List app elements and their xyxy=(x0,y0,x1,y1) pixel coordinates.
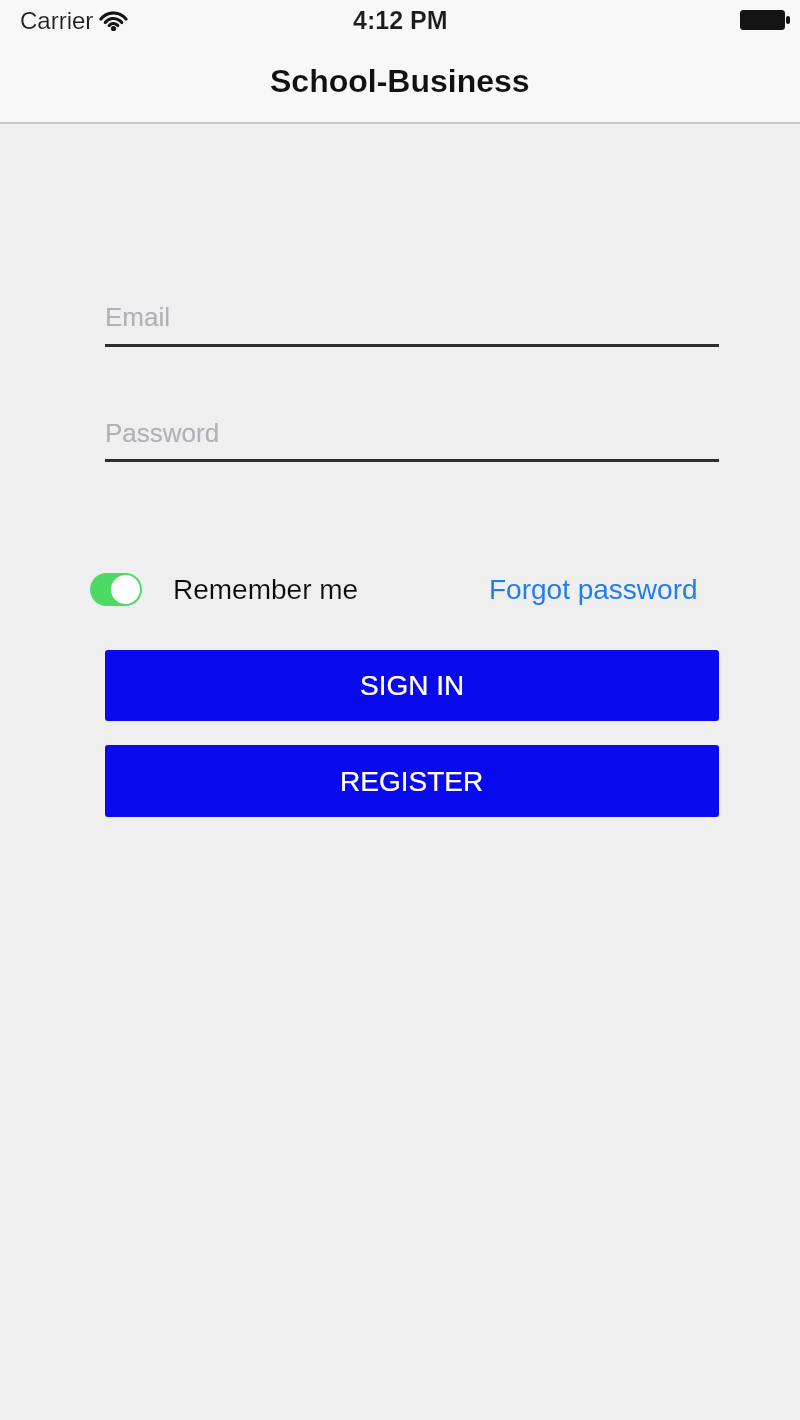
button[interactable] xyxy=(90,573,142,606)
staticText: REGISTER xyxy=(340,766,484,797)
staticText: Email xyxy=(105,302,171,331)
staticText: Password xyxy=(105,418,220,447)
staticText: SIGN IN xyxy=(360,670,465,701)
staticText: Remember me xyxy=(173,574,359,605)
button[interactable]: SIGN IN xyxy=(105,650,719,721)
button[interactable]: REGISTER xyxy=(105,745,719,817)
staticText: School-Business xyxy=(270,63,530,99)
staticText: Forgot password xyxy=(489,574,698,605)
button[interactable]: Forgot password xyxy=(489,574,698,605)
staticText: 4:12 PM xyxy=(353,6,448,34)
button[interactable]: Email xyxy=(105,299,719,347)
button[interactable]: Password xyxy=(105,415,719,462)
staticText: Carrier xyxy=(20,7,94,34)
